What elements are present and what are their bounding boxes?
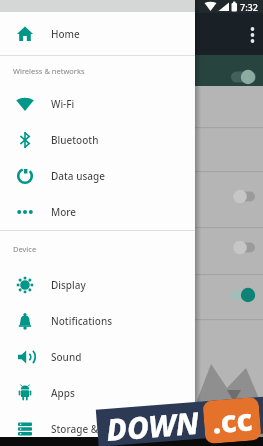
button[interactable]: Wi-Fi — [0, 86, 195, 122]
button[interactable]: Storage & USB — [0, 411, 195, 446]
button[interactable]: Sound — [0, 339, 195, 375]
button[interactable]: Apps — [0, 375, 195, 411]
staticText: Home — [51, 27, 80, 41]
button[interactable]: Home — [0, 12, 195, 55]
staticText: More — [51, 205, 77, 219]
staticText: Bluetooth — [51, 133, 99, 147]
staticText: Apps — [51, 386, 75, 400]
staticText: Wi-Fi — [51, 97, 75, 111]
staticText: Display — [51, 278, 86, 292]
staticText: Wireless & networks — [13, 66, 85, 76]
staticText: Device — [13, 244, 37, 254]
staticText: Sound — [51, 350, 82, 364]
button[interactable]: Notifications — [0, 303, 195, 339]
staticText: 7:32 — [240, 1, 258, 13]
staticText: .cc — [210, 398, 255, 442]
staticText: DOWN — [105, 402, 200, 446]
button[interactable]: More — [0, 194, 195, 230]
button[interactable]: Data usage — [0, 158, 195, 194]
staticText: Notifications — [51, 314, 113, 328]
button[interactable]: Bluetooth — [0, 122, 195, 158]
button[interactable]: Display — [0, 267, 195, 303]
staticText: Data usage — [51, 169, 105, 183]
staticText: Storage & USB — [51, 422, 121, 436]
